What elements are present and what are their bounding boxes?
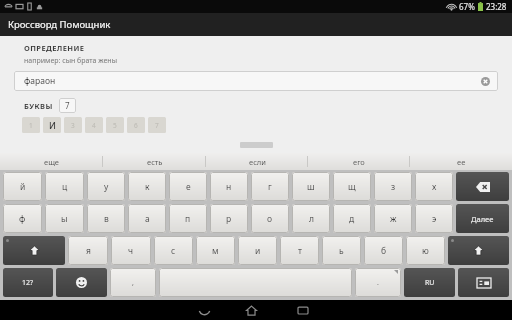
button[interactable]: й <box>3 172 42 201</box>
button[interactable]: Удалить <box>456 172 509 201</box>
staticText: ш <box>307 181 315 193</box>
button[interactable]: б <box>364 236 403 265</box>
staticText: б <box>381 245 387 257</box>
button[interactable]: ц <box>45 172 84 201</box>
button[interactable]: есть <box>103 153 206 170</box>
button[interactable]: Shift <box>3 236 65 265</box>
staticText: й <box>20 181 26 193</box>
button[interactable]: п <box>169 204 207 233</box>
button[interactable]: ы <box>45 204 84 233</box>
button[interactable]: я <box>68 236 108 265</box>
staticText: э <box>432 213 437 225</box>
button[interactable]: ф <box>3 204 42 233</box>
button[interactable]: его <box>308 153 410 170</box>
button[interactable]: Главный экран <box>225 300 277 320</box>
button[interactable]: , <box>110 268 156 297</box>
staticText: я <box>86 245 91 257</box>
button[interactable]: 7 <box>59 98 76 113</box>
staticText: т <box>298 245 302 257</box>
staticText: 67% <box>459 1 475 12</box>
button[interactable]: 7 <box>148 117 166 133</box>
staticText: м <box>212 245 219 257</box>
staticText: п <box>185 213 191 225</box>
button[interactable]: и <box>238 236 277 265</box>
button[interactable]: л <box>292 204 330 233</box>
button[interactable]: Эмодзи <box>56 268 107 297</box>
button[interactable]: с <box>154 236 193 265</box>
button[interactable]: 12? <box>3 268 53 297</box>
button[interactable]: Настройки клавиатуры <box>458 268 509 297</box>
button[interactable]: ч <box>111 236 151 265</box>
staticText: ж <box>390 213 397 225</box>
button[interactable]: н <box>210 172 248 201</box>
staticText: д <box>349 213 355 225</box>
button[interactable]: фараон <box>14 71 498 91</box>
staticText: а <box>145 213 150 225</box>
staticText: 6 <box>134 121 138 130</box>
button[interactable]: щ <box>333 172 371 201</box>
button[interactable]: еще <box>0 153 103 170</box>
staticText: е <box>186 181 191 193</box>
staticText: Кроссворд Помощник <box>8 18 111 31</box>
button[interactable]: 5 <box>106 117 124 133</box>
button[interactable]: д <box>333 204 371 233</box>
button[interactable]: з <box>374 172 412 201</box>
button[interactable]: г <box>251 172 289 201</box>
staticText: у <box>104 181 109 193</box>
staticText: 1 <box>29 121 33 130</box>
button[interactable]: . <box>355 268 401 297</box>
staticText: ь <box>339 245 344 257</box>
button[interactable]: Скрыть клавиатуру <box>183 300 225 320</box>
staticText: 23:28 <box>486 1 507 12</box>
staticText: RU <box>425 278 435 288</box>
button[interactable]: м <box>196 236 235 265</box>
button[interactable]: ь <box>322 236 361 265</box>
staticText: есть <box>147 157 163 167</box>
button[interactable]: 6 <box>127 117 145 133</box>
button[interactable] <box>159 268 352 297</box>
staticText: его <box>353 157 365 167</box>
button[interactable]: у <box>87 172 125 201</box>
staticText: щ <box>348 181 356 193</box>
staticText: л <box>309 213 314 225</box>
staticText: . <box>377 278 379 288</box>
button[interactable]: а <box>128 204 166 233</box>
button[interactable]: э <box>415 204 453 233</box>
button[interactable]: к <box>128 172 166 201</box>
staticText: з <box>391 181 396 193</box>
button[interactable]: Недавние приложения <box>277 300 329 320</box>
button[interactable]: о <box>251 204 289 233</box>
staticText: ц <box>62 181 68 193</box>
button[interactable]: Shift <box>448 236 509 265</box>
staticText: 3 <box>71 121 75 130</box>
button[interactable]: если <box>206 153 308 170</box>
staticText: еще <box>44 157 59 167</box>
staticText: г <box>268 181 272 193</box>
button[interactable]: 4 <box>85 117 103 133</box>
button[interactable]: Кроссворд Помощник <box>0 13 512 36</box>
staticText: ее <box>457 157 466 167</box>
button[interactable]: Очистить <box>479 75 491 87</box>
button[interactable]: ш <box>292 172 330 201</box>
staticText: , <box>132 278 134 288</box>
staticText: ОПРЕДЕЛЕНИЕ <box>24 43 85 53</box>
staticText: н <box>226 181 232 193</box>
button[interactable]: х <box>415 172 453 201</box>
staticText: с <box>171 245 176 257</box>
button[interactable]: в <box>87 204 125 233</box>
button[interactable]: Далее <box>456 204 509 233</box>
button[interactable]: е <box>169 172 207 201</box>
staticText: И <box>49 119 56 131</box>
staticText: 7 <box>65 100 70 111</box>
button[interactable]: р <box>210 204 248 233</box>
button[interactable]: 3 <box>64 117 82 133</box>
staticText: 5 <box>113 121 117 130</box>
button[interactable]: И <box>43 117 61 133</box>
staticText: например: сын брата жены <box>24 56 117 66</box>
button[interactable]: ю <box>406 236 445 265</box>
button[interactable]: RU <box>404 268 455 297</box>
button[interactable]: т <box>280 236 319 265</box>
button[interactable]: ее <box>410 153 512 170</box>
button[interactable]: ж <box>374 204 412 233</box>
